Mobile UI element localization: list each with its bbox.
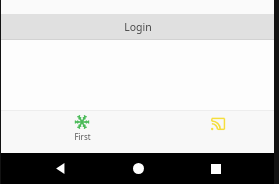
button[interactable]: Back bbox=[40, 153, 80, 184]
button[interactable]: Home bbox=[118, 153, 158, 184]
button[interactable]: First bbox=[61, 115, 103, 142]
button[interactable]: Recent apps bbox=[196, 153, 236, 184]
button[interactable]: Cast bbox=[209, 115, 227, 133]
staticText: First bbox=[74, 131, 91, 142]
staticText: Login bbox=[124, 20, 152, 34]
button[interactable]: Login bbox=[1, 14, 274, 40]
